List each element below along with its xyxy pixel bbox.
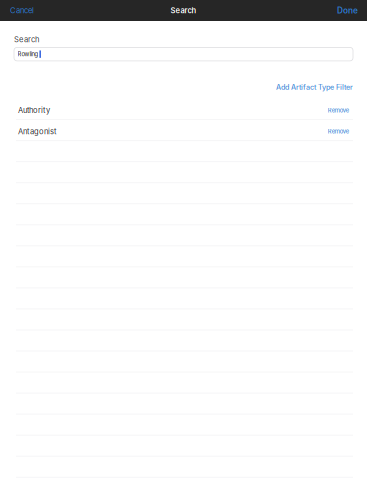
staticText: Add Artifact Type Filter	[276, 83, 353, 92]
button[interactable]: Add Artifact Type Filter	[270, 80, 367, 95]
staticText: Rowling	[18, 51, 39, 58]
staticText: Remove	[328, 107, 349, 114]
button[interactable]: Remove	[320, 124, 367, 140]
staticText: Cancel	[10, 6, 34, 15]
staticText: Search	[170, 6, 196, 15]
button[interactable]: Remove	[320, 103, 367, 119]
staticText: Search	[14, 35, 39, 44]
staticText: Antagonist	[18, 127, 56, 136]
staticText: Authority	[18, 106, 50, 115]
button[interactable]: Done	[329, 0, 367, 21]
staticText: Remove	[328, 128, 349, 135]
button[interactable]: Cancel	[0, 0, 42, 21]
staticText: Done	[337, 5, 358, 15]
